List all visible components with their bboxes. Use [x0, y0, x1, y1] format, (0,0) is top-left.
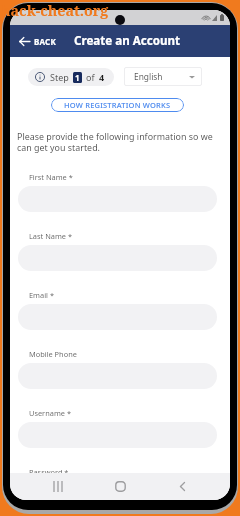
button[interactable]: Recent apps: [27, 473, 89, 500]
staticText: Mobile Phone: [29, 349, 77, 359]
staticText: Please provide the following information…: [17, 130, 213, 153]
staticText: 4: [99, 71, 105, 83]
staticText: Username *: [29, 408, 71, 418]
button[interactable]: Back: [151, 473, 213, 500]
staticText: Create an Account: [74, 33, 181, 49]
button[interactable]: English: [124, 67, 202, 86]
staticText: HOW REGISTRATION WORKS: [64, 100, 171, 110]
staticText: BACK: [34, 36, 56, 47]
staticText: Email *: [29, 290, 54, 300]
staticText: 1: [75, 72, 80, 83]
staticText: Last Name *: [29, 231, 72, 241]
staticText: Step: [50, 71, 69, 83]
staticText: Password *: [29, 467, 69, 477]
staticText: First Name *: [29, 172, 73, 182]
staticText: of: [86, 71, 95, 83]
button[interactable]: [18, 481, 217, 500]
staticText: English: [134, 71, 163, 82]
button[interactable]: BACK: [10, 25, 64, 57]
button[interactable]: Home: [89, 473, 151, 500]
button[interactable]: Step: [28, 68, 114, 86]
button[interactable]: HOW REGISTRATION WORKS: [51, 98, 184, 112]
staticText: hack-cheat.org: [1, 1, 109, 20]
